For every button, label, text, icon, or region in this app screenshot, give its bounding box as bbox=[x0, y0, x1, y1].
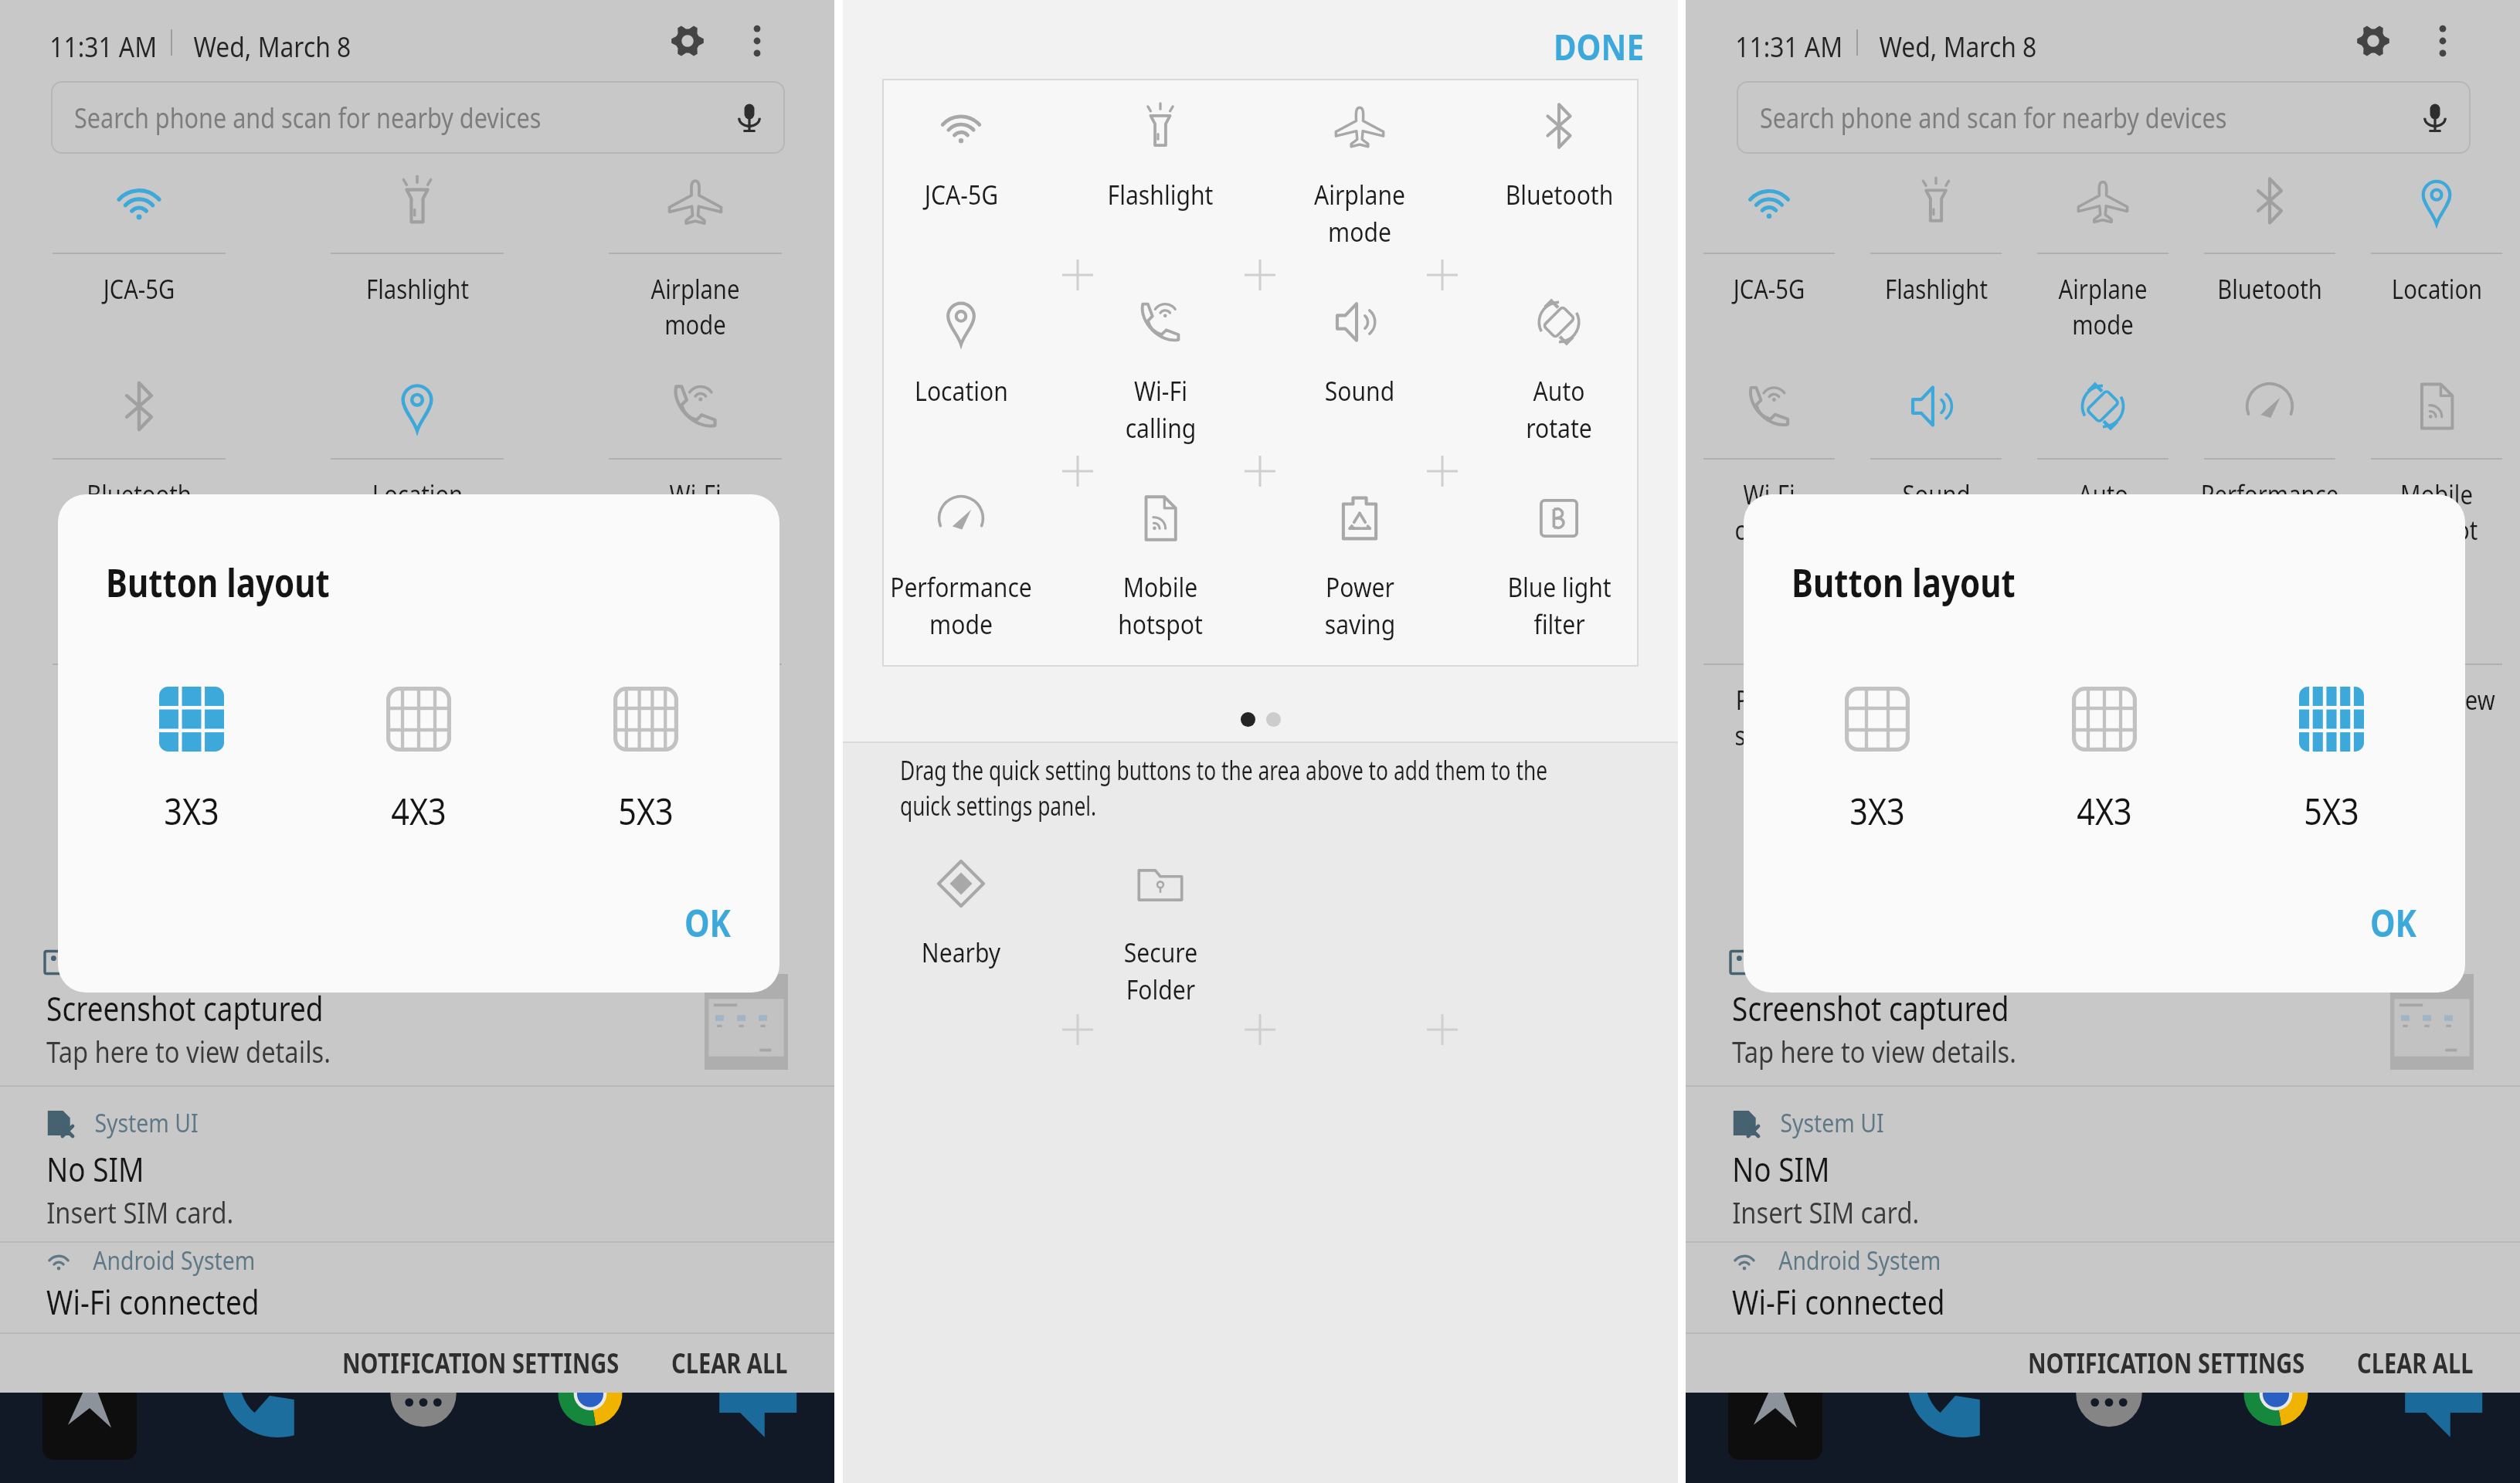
button[interactable]: 5X3 bbox=[2218, 682, 2445, 840]
button[interactable]: Camera bbox=[0, 1366, 167, 1460]
button[interactable]: NOTIFICATION SETTINGS bbox=[335, 1337, 684, 1390]
staticText: Auto rotate bbox=[385, 682, 450, 753]
button[interactable]: Bluetooth bbox=[1459, 79, 1659, 275]
button[interactable]: Sound bbox=[1853, 354, 2019, 559]
button[interactable]: Wi-Fi calling bbox=[1061, 275, 1260, 471]
staticText: Screenshot captured bbox=[46, 985, 323, 1031]
button[interactable]: Page 2 bbox=[1261, 704, 1286, 735]
button[interactable]: Flashlight bbox=[1853, 148, 2019, 354]
button[interactable]: 3X3 bbox=[78, 682, 305, 840]
staticText: Blue light filter bbox=[1507, 568, 1612, 642]
button[interactable]: OK bbox=[668, 888, 747, 957]
button[interactable]: DONE bbox=[1529, 6, 1669, 87]
button[interactable]: System UI bbox=[1686, 1087, 2520, 1241]
button[interactable]: Blue light filter bbox=[1853, 559, 2019, 765]
button[interactable]: Voice search bbox=[726, 94, 773, 141]
button[interactable]: 4X3 bbox=[305, 682, 532, 840]
button[interactable]: CLEAR ALL bbox=[664, 1337, 820, 1390]
button[interactable]: Wi-Fi calling bbox=[556, 354, 834, 559]
button[interactable]: Apps bbox=[2019, 1366, 2186, 1460]
button[interactable]: Performance mode bbox=[2186, 354, 2353, 559]
button[interactable]: Camera bbox=[1686, 1366, 1853, 1460]
button[interactable]: Performance mode bbox=[556, 559, 834, 765]
button[interactable]: Nearby bbox=[861, 846, 1061, 1042]
staticText: 4X3 bbox=[391, 786, 447, 836]
button[interactable]: 3X3 bbox=[1764, 682, 1991, 840]
staticText: Performance mode bbox=[890, 568, 1032, 642]
button[interactable]: Voice search bbox=[2412, 94, 2458, 141]
button[interactable]: Screenshots bbox=[1686, 938, 2520, 1085]
button[interactable]: Search phone and scan for nearby devices bbox=[1737, 81, 2471, 154]
button[interactable]: Power saving bbox=[1686, 559, 1853, 765]
button[interactable]: Flashlight bbox=[278, 148, 556, 354]
button[interactable]: Page 1 bbox=[1235, 704, 1261, 735]
button[interactable]: More options bbox=[732, 16, 782, 66]
button[interactable]: Android System bbox=[1686, 1243, 2520, 1332]
staticText: Insert SIM card. bbox=[1732, 1192, 1919, 1232]
button[interactable]: JCA-5G bbox=[1686, 148, 1853, 354]
staticText: NOTIFICATION SETTINGS bbox=[2028, 1345, 2305, 1382]
button[interactable]: Secure Folder bbox=[2186, 559, 2353, 765]
staticText: Secure Folder bbox=[1124, 934, 1198, 1007]
button[interactable]: Screenshots bbox=[0, 938, 834, 1085]
button[interactable]: JCA-5G bbox=[861, 79, 1061, 275]
button[interactable]: Wi-Fi calling bbox=[1686, 354, 1853, 559]
button[interactable]: JCA-5G bbox=[0, 148, 278, 354]
button[interactable]: Airplane mode bbox=[1260, 79, 1459, 275]
button[interactable]: CLEAR ALL bbox=[2349, 1337, 2505, 1390]
staticText: Sound bbox=[105, 682, 174, 718]
staticText: System UI bbox=[1780, 1105, 1884, 1140]
button[interactable]: Location bbox=[861, 275, 1061, 471]
button[interactable]: Chrome bbox=[501, 1366, 667, 1460]
button[interactable]: Phone bbox=[1853, 1366, 2019, 1460]
button[interactable]: Location bbox=[278, 354, 556, 559]
button[interactable]: Search phone and scan for nearby devices bbox=[51, 81, 785, 154]
button[interactable]: Sound bbox=[1260, 275, 1459, 471]
staticText: Airplane mode bbox=[2058, 271, 2147, 342]
button[interactable]: Settings bbox=[2348, 16, 2398, 66]
button[interactable]: Nearby bbox=[2019, 559, 2186, 765]
button[interactable]: Airplane mode bbox=[2019, 148, 2186, 354]
button[interactable]: Secure Folder bbox=[1061, 846, 1260, 1042]
button[interactable]: Auto rotate bbox=[1459, 275, 1659, 471]
button[interactable]: Phone bbox=[167, 1366, 334, 1460]
staticText: No SIM bbox=[46, 1145, 144, 1192]
button[interactable]: Sound bbox=[0, 559, 278, 765]
button[interactable]: Bluetooth bbox=[2186, 148, 2353, 354]
button[interactable]: NOTIFICATION SETTINGS bbox=[2020, 1337, 2369, 1390]
staticText: Wi-Fi calling bbox=[661, 477, 730, 548]
button[interactable]: Mobile hotspot bbox=[2353, 354, 2520, 559]
button[interactable]: Apps bbox=[334, 1366, 501, 1460]
staticText: Location bbox=[915, 372, 1008, 409]
button[interactable]: Auto rotate bbox=[2019, 354, 2186, 559]
button[interactable]: 4X3 bbox=[1991, 682, 2218, 840]
button[interactable]: Location bbox=[2353, 148, 2520, 354]
staticText: 4X3 bbox=[2076, 786, 2132, 836]
staticText: Bluetooth bbox=[1505, 176, 1614, 213]
staticText: Airplane mode bbox=[1314, 176, 1406, 249]
button[interactable]: Performance mode bbox=[861, 471, 1061, 667]
button[interactable]: Smart view bbox=[2353, 559, 2520, 765]
button[interactable]: Power saving bbox=[1260, 471, 1459, 667]
staticText: CLEAR ALL bbox=[671, 1345, 788, 1382]
button[interactable]: Chrome bbox=[2186, 1366, 2353, 1460]
button[interactable]: Android System bbox=[0, 1243, 834, 1332]
button[interactable]: Mobile hotspot bbox=[1061, 471, 1260, 667]
staticText: 3X3 bbox=[164, 786, 219, 836]
button[interactable]: Messages bbox=[667, 1366, 834, 1460]
button[interactable]: More options bbox=[2418, 16, 2467, 66]
button[interactable]: Airplane mode bbox=[556, 148, 834, 354]
staticText: Power saving bbox=[1325, 568, 1396, 642]
button[interactable]: Flashlight bbox=[1061, 79, 1260, 275]
button[interactable]: System UI bbox=[0, 1087, 834, 1241]
button[interactable]: Auto rotate bbox=[278, 559, 556, 765]
button[interactable]: Settings bbox=[663, 16, 712, 66]
button[interactable]: Blue light filter bbox=[1459, 471, 1659, 667]
button[interactable]: Bluetooth bbox=[0, 354, 278, 559]
staticText: OK bbox=[2370, 898, 2417, 948]
button[interactable]: Messages bbox=[2353, 1366, 2520, 1460]
button[interactable]: 5X3 bbox=[532, 682, 759, 840]
staticText: System UI bbox=[94, 1105, 199, 1140]
button[interactable]: OK bbox=[2354, 888, 2433, 957]
